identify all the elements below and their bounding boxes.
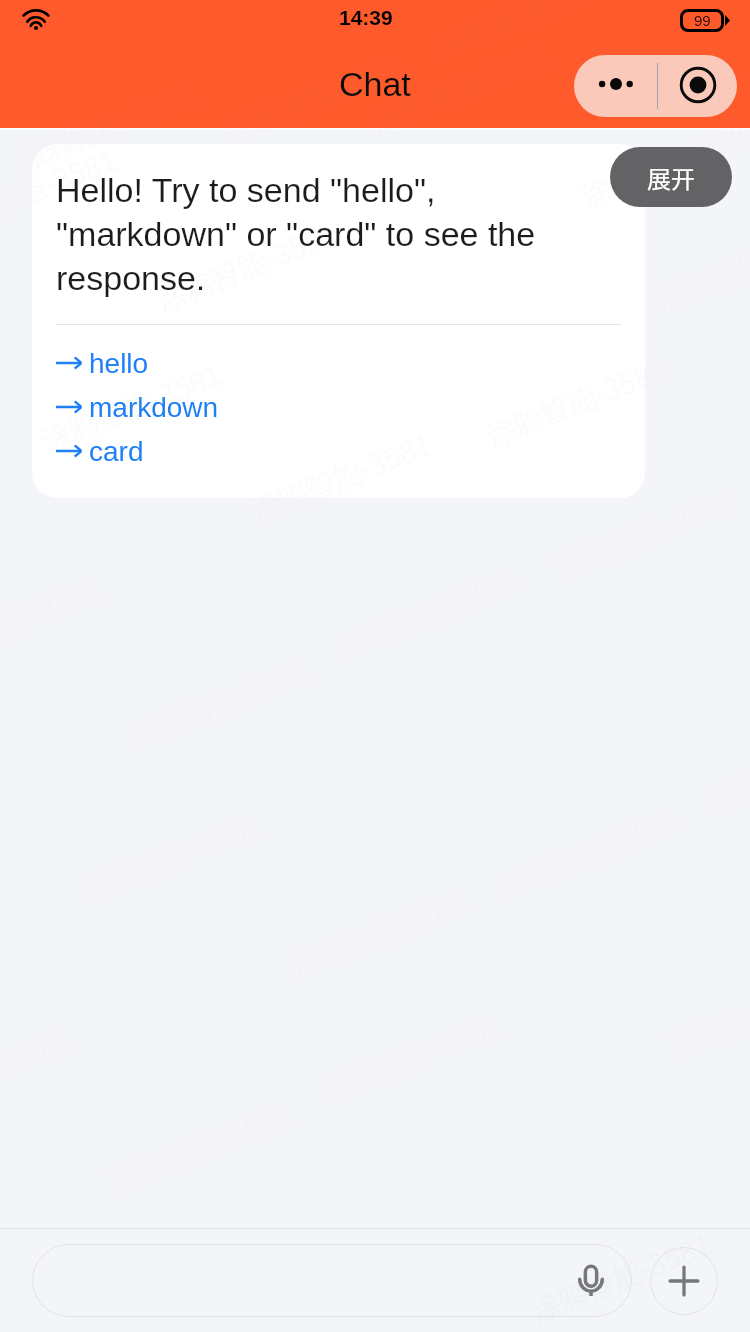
- staticText: 涂鸦智能-3581: [524, 1221, 717, 1331]
- staticText: 涂鸦智能-3581: [364, 31, 557, 141]
- staticText: markdown: [89, 392, 219, 423]
- staticText: 14:39: [339, 6, 393, 29]
- staticText: 涂鸦智能-3581: [9, 71, 202, 181]
- staticText: 涂鸦智能-3581: [429, 0, 622, 66]
- staticText: 涂鸦智能-3581: [479, 346, 672, 456]
- button[interactable]: More actions: [650, 1247, 718, 1315]
- staticText: 涂鸦智能-3581: [0, 136, 122, 246]
- staticText: Hello! Try to send "hello", "markdown" o…: [56, 171, 621, 297]
- staticText: card: [89, 436, 144, 467]
- button[interactable]: More options: [574, 55, 657, 117]
- staticText: 涂鸦智能-3581: [149, 211, 342, 321]
- staticText: 涂鸦智能-3581: [429, 0, 622, 66]
- staticText: 涂鸦智能-3581: [244, 421, 437, 531]
- staticText: 涂鸦智能-3581: [219, 41, 412, 151]
- staticText: 涂鸦智能-3581: [574, 106, 750, 216]
- button[interactable]: Close mini program: [658, 55, 737, 117]
- button[interactable]: card: [56, 429, 621, 473]
- staticText: 涂鸦智能-3581: [219, 41, 412, 151]
- staticText: 涂鸦智能-3581: [244, 421, 437, 531]
- button[interactable]: hello: [56, 341, 621, 385]
- staticText: 展开: [647, 160, 695, 195]
- button[interactable]: Voice input: [32, 1244, 632, 1317]
- staticText: 99: [694, 12, 711, 29]
- staticText: 涂鸦智能-3581: [479, 346, 672, 456]
- staticText: 涂鸦智能-3581: [34, 351, 227, 461]
- staticText: 涂鸦智能-3581: [574, 106, 750, 216]
- other: Voice input: [576, 1262, 606, 1300]
- staticText: hello: [89, 348, 149, 379]
- staticText: 涂鸦智能-3581: [549, 476, 742, 586]
- staticText: 涂鸦智能-3581: [149, 211, 342, 321]
- staticText: Chat: [339, 65, 411, 103]
- staticText: 涂鸦智能-3581: [549, 476, 742, 586]
- staticText: 涂鸦智能-3581: [364, 31, 557, 141]
- staticText: 涂鸦智能-3581: [34, 351, 227, 461]
- staticText: 涂鸦智能-3581: [0, 136, 122, 246]
- button[interactable]: 展开: [610, 147, 732, 207]
- staticText: 涂鸦智能-3581: [9, 71, 202, 181]
- staticText: 涂鸦智能-3581: [524, 1221, 717, 1331]
- button[interactable]: markdown: [56, 385, 621, 429]
